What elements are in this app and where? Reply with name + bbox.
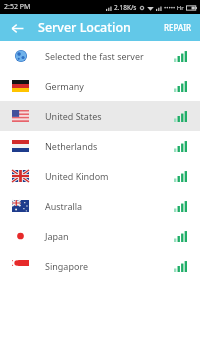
staticText: United Kindom [45, 170, 109, 182]
staticText: Selected the fast server [45, 50, 144, 62]
staticText: Australla [45, 200, 83, 212]
staticText: ••••• Hr [164, 4, 184, 12]
staticText: 2.18K/s [114, 3, 137, 12]
staticText: 2:52 PM [4, 2, 31, 12]
button[interactable]: Selected the fast server [0, 41, 200, 71]
staticText: REPAIR [164, 22, 192, 33]
button[interactable]: United Kindom [0, 161, 200, 191]
button[interactable]: Japan [0, 221, 200, 251]
button[interactable]: Netherlands [0, 131, 200, 161]
button[interactable]: Australla [0, 191, 200, 221]
staticText: Singapore [45, 260, 89, 272]
button[interactable]: United States [0, 101, 200, 131]
button[interactable]: Back [6, 17, 28, 39]
staticText: Netherlands [45, 140, 98, 152]
button[interactable]: Singapore [0, 251, 200, 281]
staticText: Germany [45, 80, 84, 92]
staticText: Japan [45, 230, 69, 242]
button[interactable]: Germany [0, 71, 200, 101]
button[interactable]: REPAIR [156, 16, 200, 39]
staticText: United States [45, 110, 102, 122]
staticText: Server Location [38, 19, 131, 36]
